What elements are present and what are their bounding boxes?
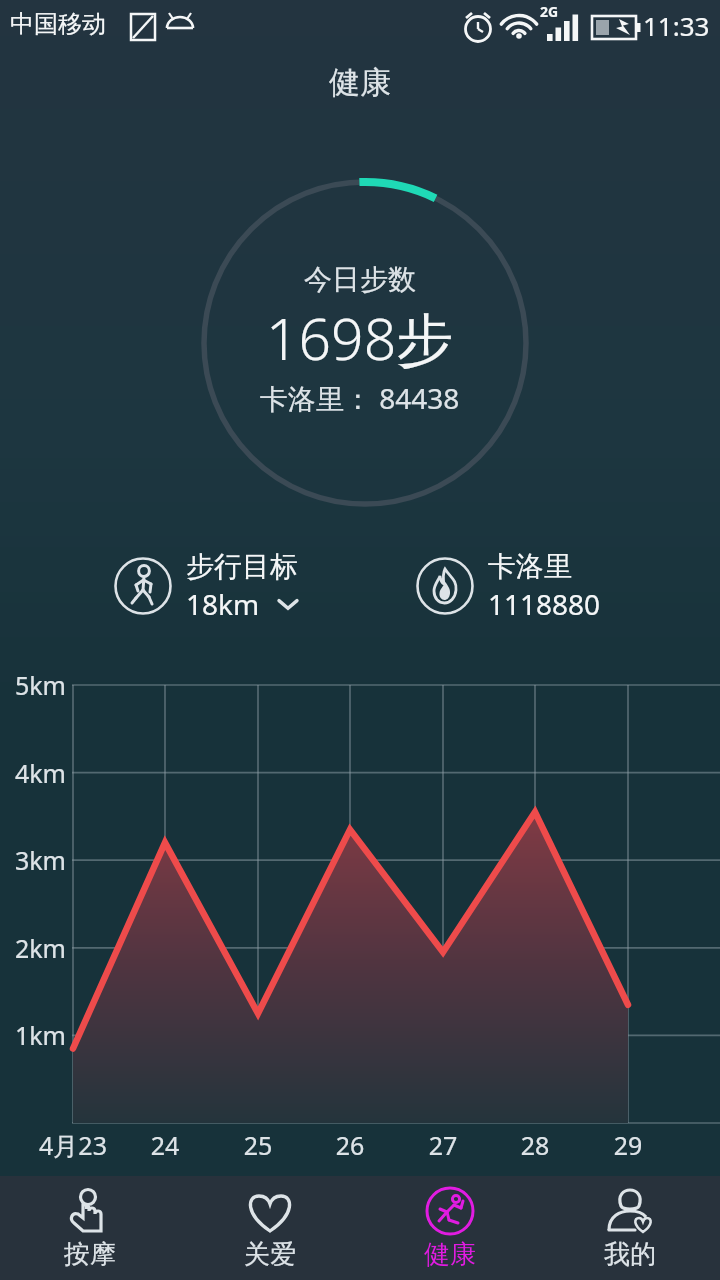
staticText: 卡洛里	[488, 549, 572, 584]
staticText: 28	[507, 1128, 563, 1162]
staticText: 26	[322, 1128, 378, 1162]
staticText: 今日步数	[304, 262, 416, 297]
staticText: 11:33	[643, 8, 710, 43]
staticText: 步行目标	[186, 549, 298, 584]
button[interactable]: 关爱	[180, 1176, 360, 1280]
staticText: 24	[137, 1128, 193, 1162]
staticText: 2G	[540, 2, 559, 21]
staticText: 按摩	[64, 1238, 116, 1271]
staticText: 中国移动	[10, 9, 106, 39]
staticText: 25	[230, 1128, 286, 1162]
button[interactable]: 卡洛里	[414, 548, 646, 624]
staticText: 29	[600, 1128, 656, 1162]
button[interactable]: 我的	[540, 1176, 720, 1280]
staticText: 1km	[0, 1018, 66, 1052]
staticText: 健康	[329, 63, 391, 102]
staticText: 2km	[0, 931, 66, 965]
staticText: 我的	[604, 1238, 656, 1271]
button[interactable]: 按摩	[0, 1176, 180, 1280]
staticText: 1698步	[266, 299, 454, 377]
staticText: 关爱	[244, 1238, 296, 1271]
staticText: 4月23	[15, 1128, 131, 1162]
staticText: 卡洛里： 84438	[260, 379, 460, 417]
staticText: 4km	[0, 756, 66, 790]
staticText: 5km	[0, 668, 66, 702]
staticText: 18km	[186, 585, 260, 623]
staticText: 27	[415, 1128, 471, 1162]
button[interactable]: 步行目标	[112, 548, 352, 624]
staticText: 1118880	[488, 585, 601, 623]
button[interactable]: 健康	[360, 1176, 540, 1280]
staticText: 健康	[424, 1238, 476, 1271]
staticText: 3km	[0, 843, 66, 877]
